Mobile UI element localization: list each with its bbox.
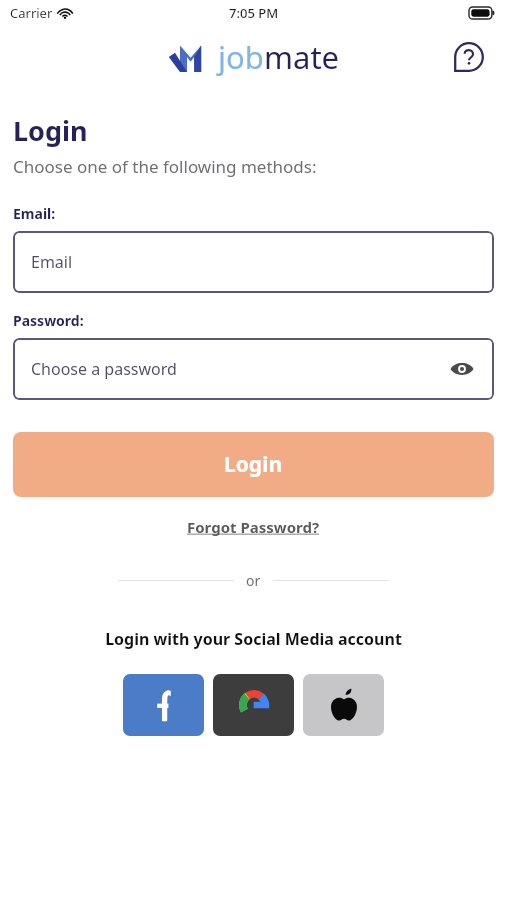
staticText: Login [13, 112, 88, 149]
button[interactable]: Help [451, 39, 487, 75]
staticText: Login with your Social Media account [105, 628, 402, 650]
staticText: Choose one of the following methods: [13, 155, 317, 178]
staticText: Email [31, 251, 73, 273]
button[interactable]: Show password [448, 355, 476, 383]
button[interactable]: Forgot Password? [179, 513, 328, 541]
button[interactable]: Choose a password [13, 338, 494, 400]
staticText: job [218, 36, 264, 78]
staticText: Forgot Password? [187, 517, 320, 537]
button[interactable]: job [168, 36, 340, 78]
staticText: mate [264, 36, 340, 78]
staticText: Carrier [10, 4, 53, 22]
button[interactable]: Login with Google [213, 674, 294, 736]
button[interactable]: Login with Apple [303, 674, 384, 736]
button[interactable]: Login [13, 432, 494, 497]
staticText: Password: [13, 311, 84, 330]
button[interactable]: Login with Facebook [123, 674, 204, 736]
button[interactable]: Email [13, 231, 494, 293]
staticText: 7:05 PM [229, 4, 279, 22]
staticText: Email: [13, 204, 56, 223]
staticText: Choose a password [31, 358, 177, 380]
staticText: or [246, 571, 261, 590]
staticText: Login [224, 450, 283, 479]
